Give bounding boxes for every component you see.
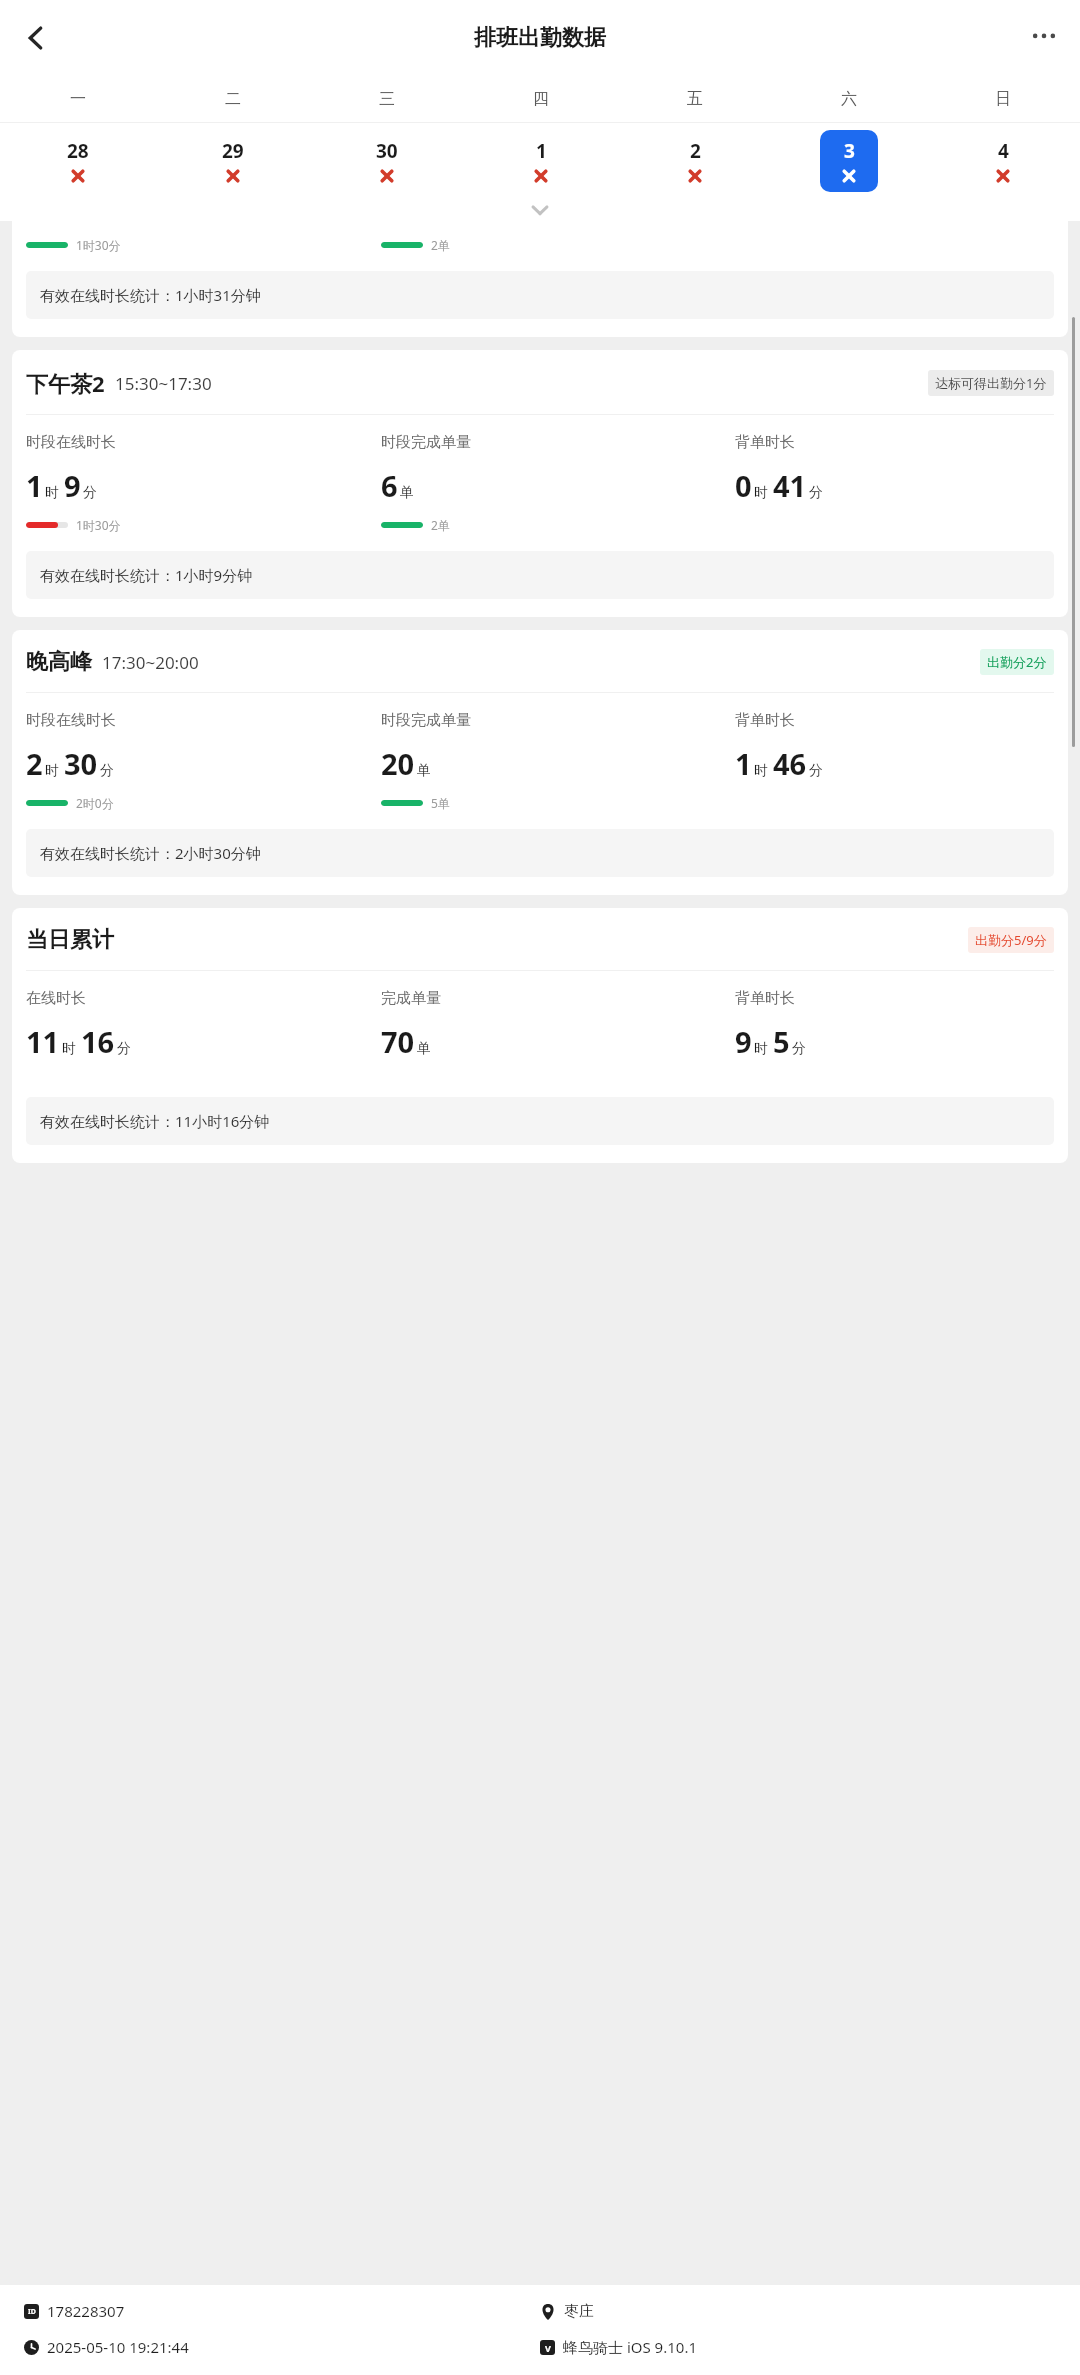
staticText: 达标可得出勤分1分 (935, 374, 1047, 392)
staticText: 9 (64, 466, 81, 505)
staticText: 二 (225, 89, 241, 109)
staticText: 时 (754, 1040, 768, 1058)
staticText: 时 (45, 762, 59, 780)
button[interactable]: 一 (0, 76, 155, 122)
staticText: 15:30~17:30 (115, 372, 212, 395)
button[interactable]: 3 (820, 130, 878, 192)
staticText: 46 (773, 744, 807, 783)
staticText: 时段完成单量 (381, 711, 471, 730)
staticText: 单 (417, 1040, 431, 1058)
staticText: 时 (754, 484, 768, 502)
staticText: 时段在线时长 (26, 711, 116, 730)
staticText: 完成单量 (381, 989, 441, 1008)
button[interactable]: 二 (155, 76, 310, 122)
staticText: 5 (773, 1022, 790, 1061)
staticText: 有效在线时长统计：2小时30分钟 (40, 843, 261, 863)
staticText: ID (28, 2307, 36, 2317)
staticText: 一 (70, 89, 86, 109)
button[interactable]: 出勤分5/9分 (975, 931, 1047, 949)
staticText: 178228307 (47, 2301, 125, 2321)
button[interactable]: Expand calendar (524, 199, 556, 221)
staticText: 2时0分 (76, 795, 114, 811)
staticText: V (545, 2342, 551, 2354)
staticText: 时段在线时长 (26, 433, 116, 452)
staticText: 70 (381, 1022, 415, 1061)
button[interactable]: 出勤分2分 (987, 653, 1047, 671)
staticText: 20 (381, 744, 415, 783)
staticText: 17:30~20:00 (102, 651, 199, 674)
button[interactable]: 2 (666, 130, 724, 192)
staticText: 背单时长 (735, 433, 795, 452)
staticText: 9 (735, 1022, 752, 1061)
staticText: 在线时长 (26, 989, 86, 1008)
staticText: 2 (26, 744, 43, 783)
staticText: 背单时长 (735, 989, 795, 1008)
staticText: 时 (45, 484, 59, 502)
staticText: 2025-05-10 19:21:44 (47, 2337, 189, 2357)
staticText: 六 (841, 89, 857, 109)
staticText: 2 (690, 138, 701, 164)
staticText: 0 (735, 466, 752, 505)
button[interactable]: 晚高峰 (12, 630, 1068, 895)
staticText: 41 (773, 466, 807, 505)
staticText: 11 (26, 1022, 60, 1061)
button[interactable]: 30 (358, 130, 416, 192)
staticText: 16 (81, 1022, 115, 1061)
staticText: 分 (809, 762, 823, 780)
staticText: 分 (83, 484, 97, 502)
button[interactable]: 三 (310, 76, 464, 122)
staticText: 6 (381, 466, 398, 505)
staticText: 1时30分 (76, 517, 121, 533)
staticText: 1 (536, 138, 547, 164)
staticText: 下午茶2 (26, 368, 105, 398)
button[interactable]: 下午茶2 (12, 350, 1068, 617)
button[interactable]: 当日累计 (12, 908, 1068, 1163)
staticText: 当日累计 (26, 926, 114, 954)
staticText: 1 (26, 466, 43, 505)
button[interactable]: 29 (204, 130, 262, 192)
staticText: 有效在线时长统计：1小时31分钟 (40, 285, 261, 305)
button[interactable]: More options (1022, 16, 1066, 60)
staticText: 分 (100, 762, 114, 780)
button[interactable]: 1 (512, 130, 570, 192)
button[interactable]: 4 (974, 130, 1032, 192)
button[interactable]: Back (12, 14, 60, 62)
staticText: 五 (687, 89, 703, 109)
staticText: 出勤分5/9分 (975, 931, 1047, 949)
staticText: 晚高峰 (26, 648, 92, 676)
staticText: 2单 (431, 517, 450, 533)
staticText: 出勤分2分 (987, 653, 1047, 671)
button[interactable]: 28 (49, 130, 107, 192)
button[interactable]: 六 (772, 76, 926, 122)
staticText: 分 (809, 484, 823, 502)
button[interactable]: 五 (618, 76, 772, 122)
staticText: 蜂鸟骑士 iOS 9.10.1 (563, 2337, 697, 2357)
staticText: 有效在线时长统计：1小时9分钟 (40, 565, 253, 585)
staticText: 四 (533, 89, 549, 109)
button[interactable]: 四 (464, 76, 618, 122)
staticText: 有效在线时长统计：11小时16分钟 (40, 1111, 270, 1131)
staticText: 30 (376, 138, 398, 164)
staticText: 时段完成单量 (381, 433, 471, 452)
staticText: 30 (64, 744, 98, 783)
staticText: 枣庄 (564, 2302, 594, 2321)
staticText: 1时30分 (76, 237, 121, 253)
button[interactable]: 日 (926, 76, 1080, 122)
staticText: 3 (844, 138, 855, 164)
staticText: 排班出勤数据 (474, 24, 606, 52)
staticText: 日 (995, 89, 1011, 109)
button[interactable]: 达标可得出勤分1分 (935, 374, 1047, 392)
staticText: 背单时长 (735, 711, 795, 730)
staticText: 时 (754, 762, 768, 780)
staticText: 时 (62, 1040, 76, 1058)
staticText: 分 (117, 1040, 131, 1058)
staticText: 分 (792, 1040, 806, 1058)
staticText: 1 (735, 744, 752, 783)
staticText: 单 (417, 762, 431, 780)
staticText: 2单 (431, 237, 450, 253)
staticText: 29 (222, 138, 244, 164)
staticText: 三 (379, 89, 395, 109)
staticText: 4 (998, 138, 1009, 164)
staticText: 28 (67, 138, 89, 164)
staticText: 单 (400, 484, 414, 502)
